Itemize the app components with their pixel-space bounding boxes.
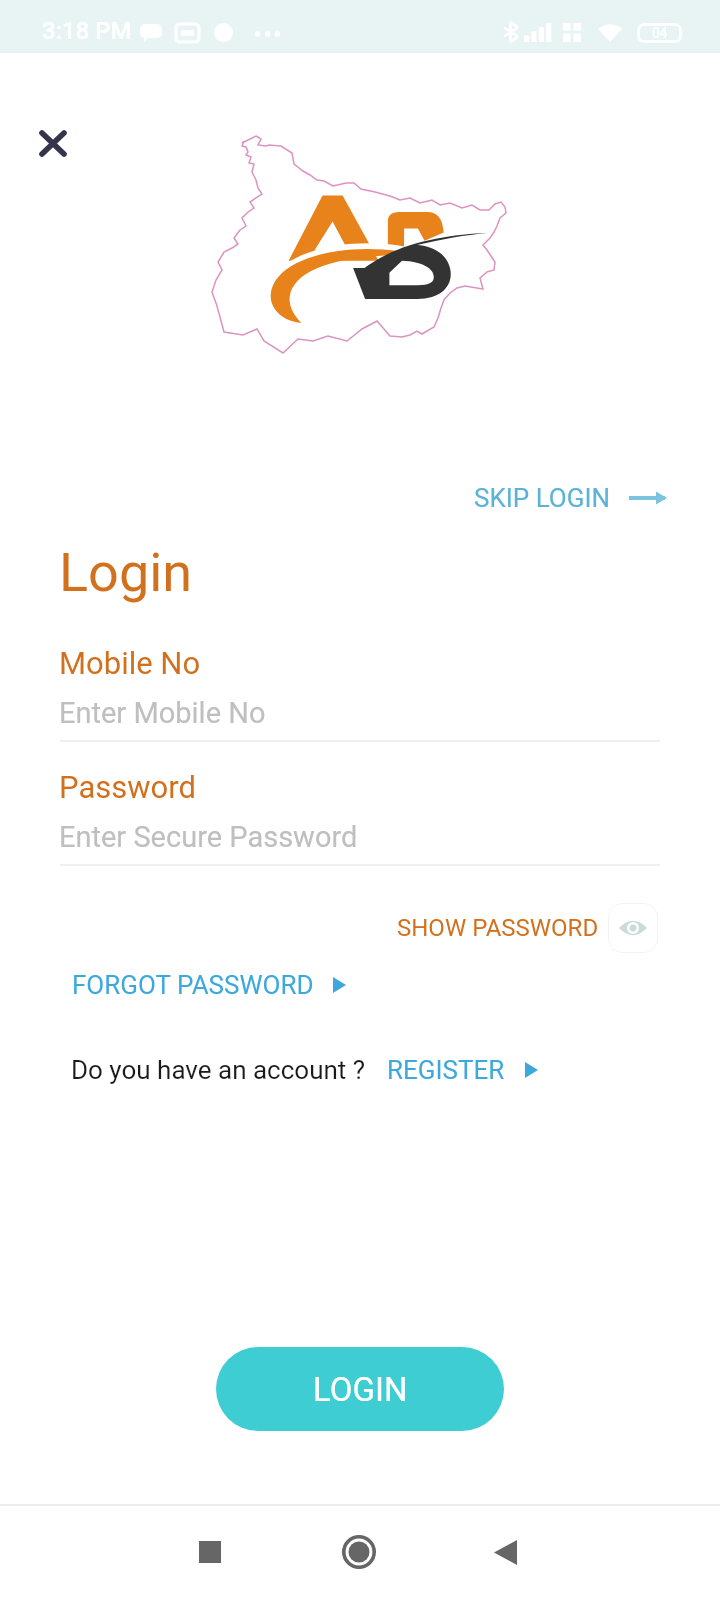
staticText: Mobile No [59, 645, 201, 681]
button[interactable]: FORGOT PASSWORD [62, 964, 356, 1006]
button[interactable]: Back [475, 1522, 535, 1582]
staticText: Do you have an account ? [71, 1055, 366, 1085]
staticText: SKIP LOGIN [474, 483, 611, 513]
staticText: Enter Mobile No [59, 696, 266, 730]
staticText: 3:18 PM [42, 17, 132, 45]
staticText: Password [59, 769, 196, 805]
staticText: Enter Secure Password [59, 820, 358, 854]
staticText: LOGIN [313, 1370, 408, 1409]
staticText: SHOW PASSWORD [397, 914, 599, 942]
button[interactable]: SHOW PASSWORD [390, 898, 665, 958]
staticText: REGISTER [387, 1055, 505, 1085]
staticText: 04 [652, 25, 668, 41]
button[interactable]: LOGIN [216, 1347, 504, 1431]
button[interactable]: Home [329, 1522, 389, 1582]
button[interactable]: SKIP LOGIN [466, 477, 675, 519]
button[interactable]: Recents [180, 1522, 240, 1582]
staticText: FORGOT PASSWORD [72, 970, 314, 1000]
staticText: Login [59, 541, 193, 604]
button[interactable]: REGISTER [379, 1049, 546, 1091]
button[interactable]: Close [23, 113, 83, 173]
